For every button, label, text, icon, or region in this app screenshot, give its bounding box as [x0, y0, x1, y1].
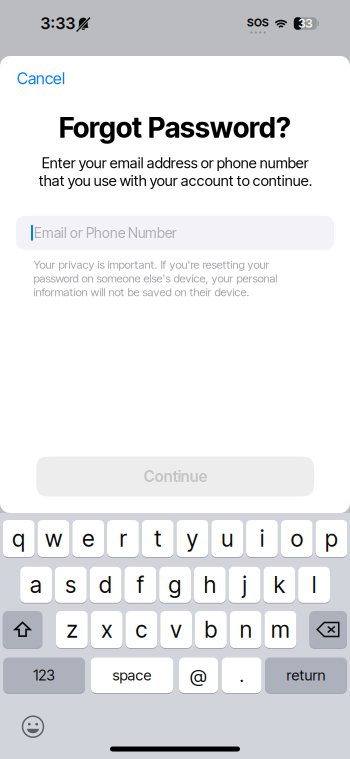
- staticText: h: [204, 571, 216, 598]
- staticText: .: [240, 664, 244, 687]
- staticText: i: [260, 525, 264, 552]
- staticText: Forgot Password?: [59, 111, 291, 144]
- staticText: Cancel: [17, 69, 65, 88]
- staticText: space: [113, 666, 152, 684]
- staticText: e: [82, 525, 94, 552]
- staticText: c: [135, 616, 147, 643]
- staticText: y: [186, 525, 198, 552]
- button[interactable]: j: [229, 566, 260, 604]
- staticText: l: [312, 571, 316, 598]
- staticText: a: [30, 571, 42, 598]
- staticText: j: [243, 571, 247, 598]
- staticText: SOS: [247, 16, 269, 29]
- button[interactable]: q: [3, 519, 35, 558]
- staticText: s: [65, 571, 76, 598]
- button[interactable]: v: [160, 610, 192, 649]
- staticText: o: [291, 525, 303, 552]
- staticText: 123: [33, 666, 55, 684]
- button[interactable]: x: [91, 610, 123, 649]
- button[interactable]: e: [72, 519, 104, 558]
- staticText: m: [271, 616, 290, 643]
- button[interactable]: c: [125, 610, 157, 649]
- staticText: @: [190, 664, 207, 687]
- button[interactable]: 123: [3, 656, 85, 694]
- button[interactable]: g: [159, 566, 191, 604]
- button[interactable]: w: [37, 519, 69, 558]
- button[interactable]: d: [90, 566, 121, 604]
- button[interactable]: @: [179, 656, 218, 694]
- button[interactable]: y: [177, 519, 208, 558]
- staticText: Email or Phone Number: [34, 224, 177, 241]
- button[interactable]: k: [263, 566, 295, 604]
- button[interactable]: h: [194, 566, 226, 604]
- staticText: Enter your email address or phone number…: [38, 154, 311, 190]
- button[interactable]: n: [230, 610, 262, 649]
- button[interactable]: f: [124, 566, 156, 604]
- button[interactable]: u: [211, 519, 243, 558]
- staticText: n: [240, 616, 252, 643]
- staticText: x: [101, 616, 112, 643]
- button[interactable]: m: [264, 610, 296, 649]
- button[interactable]: s: [55, 566, 87, 604]
- button[interactable]: space: [91, 656, 173, 694]
- staticText: 33: [298, 16, 312, 31]
- button[interactable]: i: [246, 519, 278, 558]
- button[interactable]: z: [56, 610, 88, 649]
- staticText: 3:33: [40, 14, 75, 33]
- staticText: t: [154, 525, 161, 552]
- staticText: r: [119, 525, 126, 552]
- button[interactable]: l: [298, 566, 330, 604]
- button[interactable]: return: [265, 656, 347, 694]
- staticText: q: [12, 525, 25, 552]
- staticText: return: [286, 666, 325, 684]
- staticText: z: [66, 616, 77, 643]
- staticText: d: [99, 571, 112, 598]
- button[interactable]: .: [222, 656, 261, 694]
- button[interactable]: Cancel: [17, 67, 77, 89]
- button[interactable]: r: [107, 519, 139, 558]
- button[interactable]: Shift: [3, 610, 42, 649]
- button[interactable]: t: [142, 519, 174, 558]
- staticText: w: [45, 525, 62, 552]
- staticText: Your privacy is important. If you're res…: [33, 258, 277, 299]
- staticText: p: [325, 525, 338, 552]
- button[interactable]: Emoji: [22, 716, 43, 737]
- staticText: g: [169, 571, 182, 598]
- staticText: Continue: [144, 467, 207, 486]
- staticText: b: [204, 616, 217, 643]
- staticText: u: [221, 525, 233, 552]
- button[interactable]: o: [281, 519, 313, 558]
- button[interactable]: a: [20, 566, 52, 604]
- staticText: k: [274, 571, 285, 598]
- staticText: f: [137, 571, 144, 598]
- button[interactable]: Continue: [36, 456, 314, 496]
- button[interactable]: b: [195, 610, 227, 649]
- button[interactable]: Delete: [309, 610, 347, 649]
- staticText: v: [170, 616, 182, 643]
- button[interactable]: p: [316, 519, 347, 558]
